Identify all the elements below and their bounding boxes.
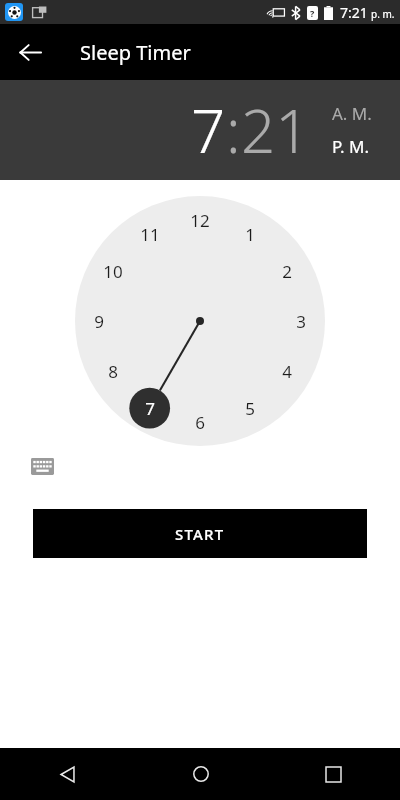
staticText: A. M. [332, 102, 372, 125]
button[interactable]: Recent apps [267, 748, 400, 800]
button[interactable]: START [33, 509, 367, 558]
staticText: 9 [94, 310, 104, 333]
staticText: 6 [195, 411, 205, 434]
staticText: 7 [191, 89, 226, 171]
staticText: ? [310, 7, 315, 19]
staticText: Sleep Timer [80, 39, 191, 66]
button[interactable]: 21 [241, 89, 310, 171]
button[interactable]: P. M. [332, 133, 370, 160]
button[interactable]: Hour picker [75, 196, 325, 446]
staticText: p. m. [371, 7, 395, 21]
staticText: 12 [190, 209, 210, 232]
button[interactable]: Back [6, 28, 54, 76]
staticText: 21 [241, 89, 310, 171]
staticText: 3 [296, 310, 306, 333]
staticText: 7 [145, 397, 155, 420]
staticText: 4 [282, 360, 292, 383]
staticText: 8 [108, 360, 118, 383]
button[interactable]: Switch to text input [22, 446, 62, 486]
staticText: 7:21 [340, 3, 368, 22]
staticText: 10 [103, 260, 123, 283]
button[interactable]: Home [134, 748, 267, 800]
staticText: 2 [282, 260, 292, 283]
button[interactable]: Back [0, 748, 134, 800]
staticText: 5 [245, 397, 255, 420]
staticText: : [226, 89, 241, 171]
staticText: START [175, 524, 225, 544]
button[interactable]: 7 [191, 89, 226, 171]
staticText: P. M. [332, 135, 370, 158]
button[interactable]: A. M. [332, 100, 372, 127]
staticText: 1 [245, 223, 255, 246]
staticText: 11 [140, 223, 160, 246]
